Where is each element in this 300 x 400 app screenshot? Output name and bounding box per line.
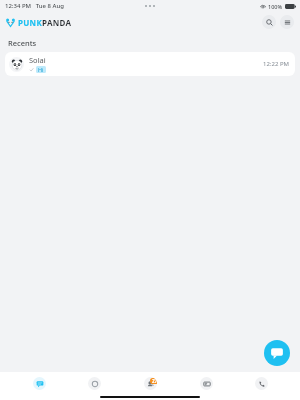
staticText: 12:22 PM	[263, 60, 289, 68]
button[interactable]: New chat	[264, 340, 290, 366]
button[interactable]: Solai	[5, 52, 295, 76]
staticText: Hi	[38, 66, 44, 73]
button[interactable]: Status	[77, 372, 111, 394]
button[interactable]: Contacts	[133, 372, 167, 394]
button[interactable]: Chats	[22, 372, 56, 394]
button[interactable]: Search	[262, 15, 276, 29]
button[interactable]: Cards	[189, 372, 223, 394]
staticText: Solai	[29, 55, 46, 65]
staticText: Recents	[8, 38, 37, 48]
button[interactable]: Calls	[244, 372, 278, 394]
staticText: 12:34 PM Tue 8 Aug	[5, 2, 65, 10]
button[interactable]: Menu	[280, 15, 294, 29]
staticText: 27	[152, 378, 157, 384]
staticText: 100%	[268, 3, 283, 10]
staticText: PUNKPANDA	[18, 17, 72, 28]
